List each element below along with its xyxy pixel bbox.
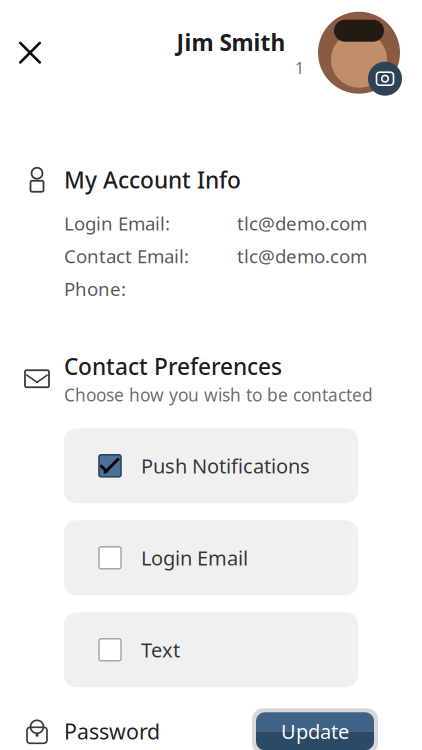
staticText: tlc@demo.com <box>237 244 367 268</box>
staticText: My Account Info <box>64 165 241 195</box>
button[interactable]: Push Notifications <box>64 428 358 503</box>
staticText: Text <box>141 636 180 663</box>
staticText: Login Email <box>141 544 248 571</box>
staticText: Phone: <box>64 276 126 301</box>
staticText: Login Email: <box>64 211 170 236</box>
button[interactable]: Password <box>0 717 160 745</box>
staticText: 1 <box>295 57 304 78</box>
button[interactable]: Close <box>8 31 52 75</box>
staticText: Password <box>64 717 160 745</box>
staticText: Choose how you wish to be contacted <box>64 383 373 406</box>
staticText: Update <box>281 718 349 745</box>
staticText: Contact Email: <box>64 244 189 268</box>
staticText: Jim Smith <box>176 27 285 57</box>
staticText: Contact Preferences <box>64 351 282 381</box>
button[interactable]: Text <box>64 612 358 687</box>
staticText: Push Notifications <box>141 452 310 479</box>
button[interactable]: Update <box>250 706 380 750</box>
button[interactable]: Login Email <box>64 520 358 595</box>
button[interactable]: Change profile photo <box>316 10 402 96</box>
staticText: tlc@demo.com <box>237 211 367 236</box>
